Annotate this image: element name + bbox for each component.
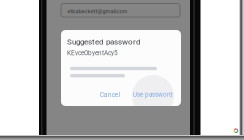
button[interactable]: Use password	[133, 91, 173, 98]
button[interactable]: Cancel	[100, 91, 121, 98]
staticText: Use password	[133, 91, 173, 98]
staticText: elisabeckett@gmail.com	[68, 8, 128, 15]
staticText: KEvceObyentAcy5	[67, 49, 118, 57]
staticText: Cancel	[100, 91, 121, 98]
staticText: Suggested password	[67, 37, 141, 47]
